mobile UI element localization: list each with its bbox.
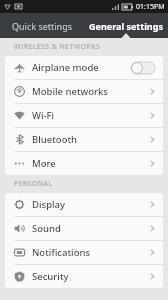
button[interactable]: Notifications <box>5 241 163 264</box>
button[interactable]: Mobile networks <box>5 80 163 103</box>
button[interactable]: More <box>5 152 163 175</box>
staticText: Display <box>32 198 150 211</box>
staticText: Airplane mode <box>32 61 131 74</box>
staticText: WIRELESS & NETWORKS <box>14 42 101 52</box>
staticText: Sound <box>32 222 150 235</box>
staticText: Wi-Fi <box>32 109 150 122</box>
staticText: Quick settings <box>12 20 72 32</box>
button[interactable]: Display <box>5 193 163 216</box>
button[interactable]: General settings <box>84 13 168 38</box>
button[interactable]: Airplane mode toggle <box>131 62 155 74</box>
staticText: Notifications <box>32 246 150 259</box>
staticText: Security <box>32 270 150 283</box>
button[interactable]: Airplane mode <box>5 56 163 79</box>
button[interactable]: Sound <box>5 217 163 240</box>
button[interactable]: Wi-Fi <box>5 104 163 127</box>
staticText: PERSONAL <box>14 179 53 189</box>
staticText: 01:15PM <box>136 2 165 12</box>
staticText: General settings <box>89 20 163 32</box>
button[interactable]: Quick settings <box>0 13 84 38</box>
button[interactable]: Bluetooth <box>5 128 163 151</box>
button[interactable]: Security <box>5 265 163 288</box>
staticText: More <box>32 157 150 170</box>
staticText: Bluetooth <box>32 133 150 146</box>
staticText: Mobile networks <box>32 85 150 98</box>
